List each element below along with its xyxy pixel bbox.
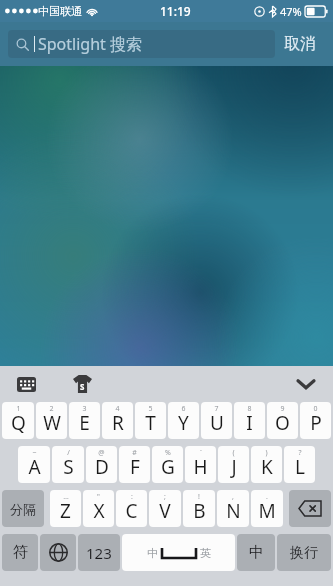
button[interactable]: ? — [284, 446, 315, 483]
button[interactable]: 9 — [267, 402, 298, 439]
button[interactable]: 换行 — [277, 534, 331, 571]
button[interactable]: Hide keyboard — [291, 369, 321, 399]
staticText: … — [63, 492, 69, 502]
staticText: 符 — [13, 543, 28, 562]
staticText: R — [112, 410, 124, 436]
button[interactable]: 5 — [135, 402, 166, 439]
staticText: " — [97, 492, 100, 502]
staticText: N — [226, 498, 241, 524]
staticText: 换行 — [290, 544, 318, 562]
staticText: Y — [178, 410, 189, 436]
staticText: ? — [298, 448, 302, 458]
staticText: 6 — [181, 404, 186, 414]
button[interactable]: Change language — [40, 534, 76, 571]
staticText: 取消 — [284, 34, 316, 54]
button[interactable]: . — [251, 490, 283, 527]
staticText: ! — [198, 492, 200, 502]
staticText: S — [80, 381, 85, 392]
staticText: % — [165, 448, 171, 458]
staticText: # — [132, 448, 137, 458]
staticText: A — [28, 454, 41, 480]
staticText: . — [266, 492, 268, 502]
staticText: S — [63, 454, 74, 480]
staticText: T — [145, 410, 156, 436]
button[interactable]: Theme — [68, 370, 96, 398]
staticText: @ — [98, 448, 105, 458]
staticText: 123 — [86, 543, 112, 563]
staticText: X — [93, 498, 105, 524]
button[interactable]: 0 — [300, 402, 331, 439]
staticText: J — [231, 454, 237, 480]
button[interactable]: 取消 — [275, 22, 325, 66]
button[interactable]: 6 — [168, 402, 199, 439]
button[interactable]: ) — [251, 446, 282, 483]
button[interactable]: , — [217, 490, 249, 527]
staticText: / — [67, 448, 70, 458]
staticText: B — [193, 498, 206, 524]
staticText: 中国联通 — [38, 4, 82, 18]
staticText: D — [95, 454, 109, 480]
staticText: O — [275, 410, 290, 436]
staticText: W — [43, 410, 61, 436]
staticText: Spotlight 搜索 — [38, 33, 143, 55]
button[interactable]: Delete — [289, 490, 331, 527]
staticText: E — [79, 410, 90, 436]
button[interactable]: 7 — [201, 402, 232, 439]
staticText: G — [161, 454, 175, 480]
staticText: Z — [60, 498, 71, 524]
button[interactable]: 符 — [2, 534, 38, 571]
staticText: Q — [11, 410, 26, 436]
button[interactable]: 4 — [102, 402, 133, 439]
button[interactable]: / — [52, 446, 84, 483]
button[interactable]: ! — [183, 490, 215, 527]
staticText: I — [246, 410, 253, 436]
button[interactable]: " — [83, 490, 114, 527]
staticText: 47% — [280, 4, 302, 19]
staticText: 4 — [115, 404, 120, 414]
staticText: C — [125, 498, 138, 524]
staticText: 中 — [147, 546, 158, 560]
button[interactable]: 123 — [78, 534, 120, 571]
staticText: ´ — [200, 448, 202, 458]
button[interactable]: Spotlight 搜索 — [8, 30, 275, 58]
button[interactable]: 分隔 — [2, 490, 44, 527]
staticText: 2 — [49, 404, 54, 414]
staticText: : — [131, 492, 133, 502]
staticText: L — [295, 454, 305, 480]
staticText: ( — [232, 448, 235, 458]
staticText: 中 — [249, 543, 264, 562]
button[interactable]: Keyboard — [12, 370, 40, 398]
staticText: 11:19 — [160, 3, 191, 19]
button[interactable]: 2 — [36, 402, 67, 439]
staticText: U — [210, 410, 224, 436]
button[interactable]: 8 — [234, 402, 265, 439]
button[interactable]: … — [50, 490, 81, 527]
button[interactable]: 中 — [237, 534, 275, 571]
button[interactable]: # — [119, 446, 150, 483]
staticText: 0 — [313, 404, 318, 414]
button[interactable]: 3 — [69, 402, 100, 439]
staticText: ~ — [32, 448, 37, 458]
staticText: 1 — [16, 404, 21, 414]
staticText: 分隔 — [10, 501, 36, 517]
button[interactable]: ; — [149, 490, 181, 527]
staticText: P — [310, 410, 322, 436]
staticText: 英 — [200, 546, 211, 560]
staticText: K — [261, 454, 273, 480]
staticText: 9 — [280, 404, 285, 414]
staticText: V — [159, 498, 171, 524]
button[interactable]: ( — [218, 446, 249, 483]
button[interactable]: : — [116, 490, 147, 527]
staticText: 3 — [82, 404, 87, 414]
staticText: ) — [265, 448, 268, 458]
button[interactable]: ´ — [185, 446, 216, 483]
staticText: ; — [164, 492, 166, 502]
staticText: 7 — [214, 404, 219, 414]
button[interactable]: % — [152, 446, 183, 483]
button[interactable]: Space — [122, 534, 235, 571]
button[interactable]: @ — [86, 446, 117, 483]
staticText: M — [258, 498, 276, 524]
staticText: H — [193, 454, 208, 480]
button[interactable]: 1 — [2, 402, 34, 439]
button[interactable]: ~ — [18, 446, 50, 483]
